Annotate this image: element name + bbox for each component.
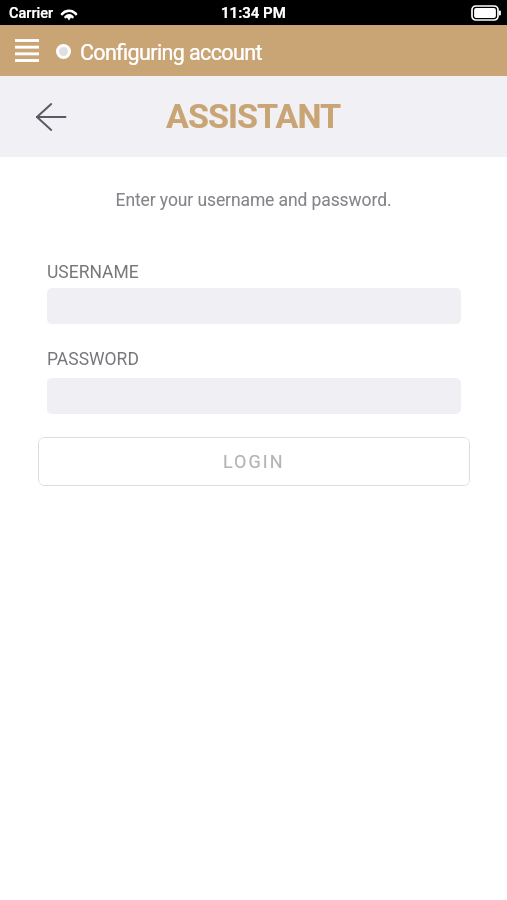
staticText: Configuring account: [80, 40, 262, 65]
button[interactable]: Back: [24, 90, 78, 144]
staticText: USERNAME: [47, 262, 139, 283]
staticText: Enter your username and password.: [0, 190, 507, 211]
button[interactable]: LOGIN: [38, 437, 470, 486]
button[interactable]: Menu: [0, 25, 507, 76]
staticText: 11:34 PM: [221, 4, 286, 22]
staticText: Carrier: [9, 5, 54, 22]
staticText: PASSWORD: [47, 349, 139, 370]
staticText: LOGIN: [223, 451, 285, 472]
staticText: ASSISTANT: [166, 96, 341, 136]
other: Menu: [15, 39, 39, 62]
